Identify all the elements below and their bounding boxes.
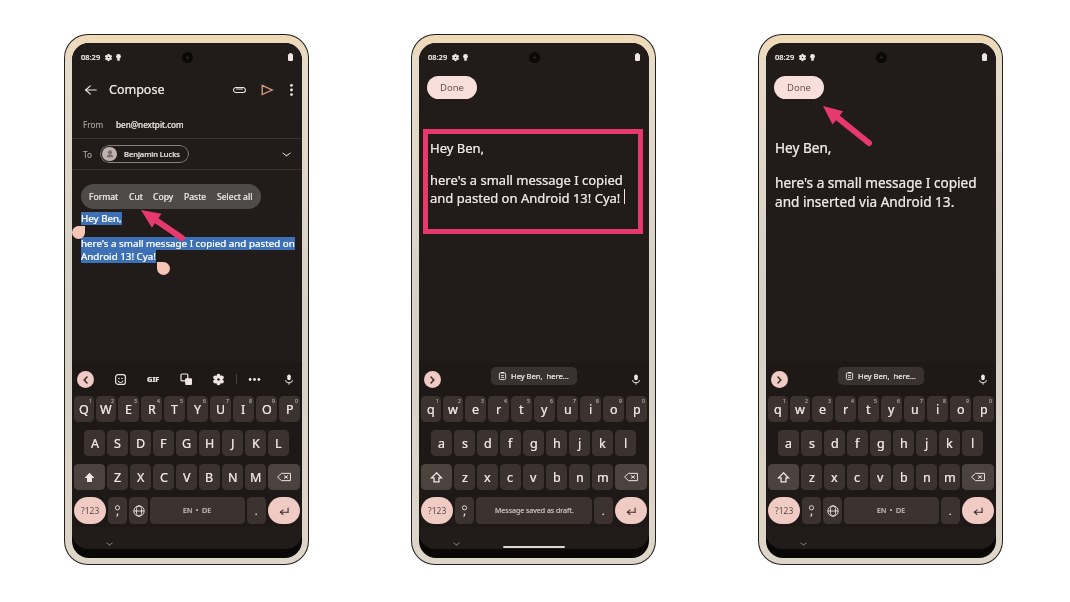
button[interactable]: Enter bbox=[268, 497, 300, 524]
button[interactable]: . bbox=[247, 497, 266, 524]
button[interactable]: X bbox=[130, 464, 151, 490]
button[interactable]: n bbox=[569, 464, 590, 490]
button[interactable]: Hey Ben, here... bbox=[838, 367, 924, 385]
button[interactable]: i bbox=[927, 396, 948, 422]
button[interactable]: O bbox=[256, 396, 277, 422]
button[interactable]: Y bbox=[187, 396, 208, 422]
button[interactable]: ?123 bbox=[421, 497, 453, 524]
button[interactable]: Copy bbox=[148, 187, 179, 207]
button[interactable]: G bbox=[176, 430, 197, 456]
button[interactable]: w bbox=[790, 396, 810, 422]
button[interactable]: Back bbox=[80, 79, 102, 101]
button[interactable]: n bbox=[916, 464, 937, 490]
button[interactable]: GIF bbox=[144, 370, 163, 388]
button[interactable]: m bbox=[939, 464, 960, 490]
button[interactable]: Attach file bbox=[228, 79, 250, 101]
button[interactable]: l bbox=[615, 430, 636, 456]
button[interactable]: y bbox=[881, 396, 902, 422]
button[interactable]: Message saved as draft. bbox=[476, 497, 592, 524]
button[interactable]: Hide keyboard bbox=[796, 537, 810, 549]
button[interactable]: j bbox=[569, 430, 590, 456]
button[interactable]: m bbox=[592, 464, 613, 490]
button[interactable]: U bbox=[210, 396, 231, 422]
button[interactable]: a bbox=[778, 430, 799, 456]
button[interactable]: D bbox=[130, 430, 151, 456]
button[interactable]: x bbox=[824, 464, 845, 490]
button[interactable]: Done bbox=[774, 76, 824, 99]
button[interactable]: E bbox=[118, 396, 139, 422]
button[interactable]: x bbox=[477, 464, 498, 490]
button[interactable]: d bbox=[824, 430, 845, 456]
button[interactable]: Enter bbox=[615, 497, 647, 524]
button[interactable]: ?123 bbox=[74, 497, 106, 524]
button[interactable]: v bbox=[523, 464, 544, 490]
button[interactable]: Format bbox=[81, 184, 261, 209]
button[interactable]: r bbox=[835, 396, 856, 422]
button[interactable]: h bbox=[893, 430, 914, 456]
button[interactable]: e bbox=[465, 396, 486, 422]
button[interactable]: More options bbox=[281, 80, 301, 100]
button[interactable]: q bbox=[421, 396, 441, 422]
button[interactable]: EN • DE bbox=[150, 497, 245, 524]
button[interactable]: Forward bbox=[424, 371, 441, 388]
button[interactable]: Hide keyboard bbox=[449, 537, 463, 549]
button[interactable]: z bbox=[801, 464, 822, 490]
button[interactable]: Select all bbox=[212, 187, 258, 207]
button[interactable]: p bbox=[973, 396, 994, 422]
button[interactable]: Emoji and comma bbox=[802, 497, 821, 524]
button[interactable]: Change language bbox=[129, 497, 148, 524]
button[interactable]: t bbox=[511, 396, 532, 422]
button[interactable]: Emoji and comma bbox=[455, 497, 474, 524]
button[interactable]: K bbox=[245, 430, 266, 456]
button[interactable]: o bbox=[603, 396, 624, 422]
button[interactable]: C bbox=[153, 464, 174, 490]
button[interactable]: H bbox=[199, 430, 220, 456]
button[interactable]: b bbox=[546, 464, 567, 490]
button[interactable]: f bbox=[500, 430, 521, 456]
button[interactable]: Format bbox=[84, 187, 124, 207]
button[interactable]: Hide keyboard bbox=[102, 537, 116, 549]
button[interactable]: Shift bbox=[768, 464, 799, 490]
button[interactable]: b bbox=[893, 464, 914, 490]
button[interactable]: a bbox=[431, 430, 452, 456]
button[interactable]: Forward bbox=[771, 371, 788, 388]
button[interactable]: A bbox=[84, 430, 105, 456]
button[interactable]: Shift bbox=[421, 464, 452, 490]
button[interactable]: g bbox=[523, 430, 544, 456]
button[interactable]: o bbox=[950, 396, 971, 422]
button[interactable]: Q bbox=[74, 396, 94, 422]
button[interactable]: EN • DE bbox=[844, 497, 939, 524]
button[interactable]: f bbox=[847, 430, 868, 456]
button[interactable]: R bbox=[141, 396, 162, 422]
button[interactable]: u bbox=[904, 396, 925, 422]
button[interactable]: B bbox=[199, 464, 220, 490]
button[interactable]: Send bbox=[256, 79, 278, 101]
button[interactable]: Voice input bbox=[974, 371, 991, 388]
button[interactable]: V bbox=[176, 464, 197, 490]
button[interactable]: r bbox=[488, 396, 509, 422]
button[interactable]: j bbox=[916, 430, 937, 456]
button[interactable]: . bbox=[594, 497, 613, 524]
button[interactable]: Done bbox=[427, 76, 477, 99]
button[interactable]: T bbox=[164, 396, 185, 422]
button[interactable]: ?123 bbox=[768, 497, 800, 524]
button[interactable]: Enter bbox=[962, 497, 994, 524]
button[interactable]: Keyboard settings bbox=[210, 371, 227, 388]
button[interactable]: z bbox=[454, 464, 475, 490]
button[interactable]: F bbox=[153, 430, 174, 456]
button[interactable]: w bbox=[443, 396, 463, 422]
button[interactable]: L bbox=[268, 430, 289, 456]
button[interactable]: Translate bbox=[178, 371, 195, 388]
button[interactable]: g bbox=[870, 430, 891, 456]
button[interactable]: c bbox=[500, 464, 521, 490]
button[interactable]: h bbox=[546, 430, 567, 456]
button[interactable]: k bbox=[592, 430, 613, 456]
button[interactable]: y bbox=[534, 396, 555, 422]
button[interactable]: . bbox=[941, 497, 960, 524]
button[interactable]: c bbox=[847, 464, 868, 490]
button[interactable]: Change language bbox=[823, 497, 842, 524]
button[interactable]: Stickers bbox=[112, 371, 129, 388]
button[interactable]: Back bbox=[77, 371, 94, 388]
button[interactable]: l bbox=[962, 430, 983, 456]
button[interactable]: W bbox=[96, 396, 116, 422]
